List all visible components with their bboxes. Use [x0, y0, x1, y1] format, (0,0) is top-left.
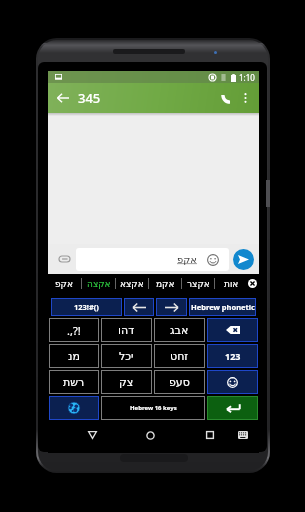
staticText: אקמ — [156, 279, 175, 289]
button[interactable]: Home — [140, 425, 160, 445]
staticText: 123!#() — [74, 302, 99, 312]
staticText: זחט — [170, 350, 189, 363]
button[interactable]: Numbers — [207, 344, 258, 368]
button[interactable]: Recents — [200, 425, 220, 445]
staticText: צק — [119, 376, 134, 389]
button[interactable]: אקצר — [182, 274, 214, 293]
button[interactable]: Emoji — [207, 370, 258, 394]
button[interactable]: רשת — [49, 370, 99, 394]
button[interactable]: אבג — [154, 318, 205, 342]
button[interactable]: Hebrew phonetic — [189, 298, 256, 316]
button[interactable]: Backspace — [207, 318, 258, 342]
button[interactable]: Close suggestions — [247, 278, 258, 289]
button[interactable]: More options — [237, 90, 253, 106]
staticText: אות — [224, 279, 239, 289]
button[interactable]: Back — [82, 425, 102, 445]
staticText: אבג — [170, 324, 189, 337]
staticText: אקפ — [55, 279, 74, 289]
button[interactable]: Enter — [207, 396, 258, 420]
button[interactable]: Move left — [124, 298, 154, 316]
button[interactable]: Back — [55, 90, 71, 106]
staticText: 123 — [225, 350, 241, 362]
button[interactable]: .,?! — [49, 318, 99, 342]
button[interactable]: סעפ — [154, 370, 205, 394]
staticText: יכל — [119, 350, 134, 363]
staticText: אקצה — [87, 279, 111, 289]
button[interactable]: Change language — [49, 396, 99, 420]
button[interactable]: 123!#() — [51, 298, 122, 316]
staticText: סעפ — [169, 376, 190, 389]
staticText: אקצא — [120, 279, 144, 289]
staticText: רשת — [63, 376, 85, 389]
button[interactable]: מנ — [49, 344, 99, 368]
button[interactable]: Send — [233, 249, 254, 270]
button[interactable]: Move right — [156, 298, 187, 316]
button[interactable]: Call — [216, 88, 236, 108]
button[interactable]: דהו — [101, 318, 152, 342]
button[interactable]: אות — [215, 274, 247, 293]
button[interactable]: אקמ — [149, 274, 181, 293]
staticText: Hebrew 16 keys — [130, 404, 177, 412]
staticText: 1:10 — [239, 72, 255, 83]
staticText: דהו — [118, 324, 135, 337]
button[interactable]: אקפ — [76, 248, 229, 271]
button[interactable]: אקצה — [82, 274, 115, 293]
staticText: אקצר — [187, 279, 210, 289]
button[interactable]: Attach — [56, 251, 72, 267]
staticText: מנ — [68, 350, 80, 363]
button[interactable]: 345 — [78, 89, 101, 107]
button[interactable]: צק — [101, 370, 152, 394]
staticText: .,?! — [67, 323, 81, 338]
button[interactable]: Hebrew 16 keys — [101, 396, 205, 420]
staticText: Hebrew phonetic — [191, 302, 255, 312]
staticText: אקפ — [177, 254, 198, 266]
button[interactable]: זחט — [154, 344, 205, 368]
button[interactable]: אקצא — [116, 274, 148, 293]
button[interactable]: יכל — [101, 344, 152, 368]
button[interactable]: אקפ — [48, 274, 81, 293]
button[interactable]: Switch keyboard — [233, 425, 253, 445]
